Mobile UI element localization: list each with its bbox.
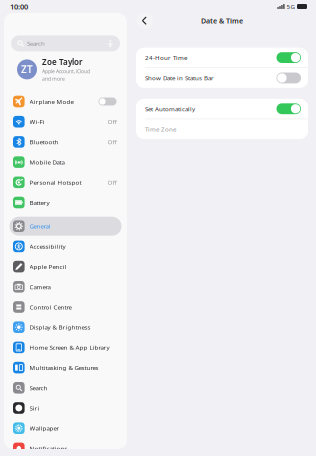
button[interactable]: Notifications xyxy=(9,438,121,456)
button[interactable]: Siri xyxy=(9,398,121,418)
button[interactable]: Apple Pencil xyxy=(9,256,121,277)
button[interactable]: Bluetooth xyxy=(9,132,121,152)
button[interactable]: Battery xyxy=(9,192,121,213)
staticText: Off xyxy=(107,117,116,126)
staticText: Notifications xyxy=(30,444,68,453)
button[interactable]: Control Centre xyxy=(9,297,121,317)
button[interactable]: Display & Brightness xyxy=(9,317,121,337)
staticText: Display & Brightness xyxy=(30,323,91,331)
button[interactable]: General xyxy=(9,216,121,236)
staticText: Set Automatically xyxy=(145,105,195,113)
staticText: ZT xyxy=(21,63,33,76)
staticText: 5G xyxy=(286,2,294,11)
button[interactable]: 24-Hour Time xyxy=(136,48,308,67)
staticText: General xyxy=(30,222,51,230)
staticText: Search xyxy=(30,384,48,392)
button[interactable]: Show Date in Status Bar xyxy=(136,68,308,88)
staticText: Date & Time xyxy=(201,16,243,26)
button[interactable]: Multitasking & Gestures xyxy=(9,357,121,378)
staticText: Mobile Data xyxy=(30,158,65,166)
button[interactable]: Set Automatically xyxy=(136,99,308,119)
staticText: Apple Account, iCloud xyxy=(42,68,90,75)
staticText: Wallpaper xyxy=(30,424,60,432)
staticText: Wi-Fi xyxy=(30,117,45,126)
staticText: Home Screen & App Library xyxy=(30,343,110,352)
button[interactable]: Back xyxy=(136,12,153,29)
button[interactable]: Accessibility xyxy=(9,236,121,256)
staticText: Zoe Taylor xyxy=(42,57,82,67)
button[interactable]: Mobile Data xyxy=(9,152,121,172)
staticText: Show Date in Status Bar xyxy=(145,74,214,82)
staticText: 10:00 xyxy=(10,1,28,12)
staticText: Control Centre xyxy=(30,303,72,311)
button[interactable]: Time Zone xyxy=(136,119,308,139)
staticText: 24-Hour Time xyxy=(145,53,187,62)
staticText: Personal Hotspot xyxy=(30,178,82,186)
staticText: Search xyxy=(27,39,45,48)
staticText: and more xyxy=(42,75,65,82)
staticText: Siri xyxy=(30,404,40,412)
staticText: Apple Pencil xyxy=(30,262,67,271)
button[interactable]: Search xyxy=(9,378,121,398)
button[interactable]: Home Screen & App Library xyxy=(9,337,121,357)
button[interactable]: Wallpaper xyxy=(9,418,121,438)
button[interactable]: Wi-Fi xyxy=(9,112,121,132)
staticText: Battery xyxy=(30,198,50,207)
button[interactable]: Airplane Mode xyxy=(9,91,121,112)
button[interactable]: Personal Hotspot xyxy=(9,172,121,192)
staticText: Bluetooth xyxy=(30,138,59,146)
staticText: Accessibility xyxy=(30,242,66,251)
staticText: Off xyxy=(107,138,116,146)
staticText: Off xyxy=(107,178,116,186)
staticText: Time Zone xyxy=(145,125,176,133)
button[interactable]: ZT xyxy=(4,54,127,84)
staticText: Multitasking & Gestures xyxy=(30,363,99,372)
staticText: Airplane Mode xyxy=(30,97,74,106)
button[interactable]: Camera xyxy=(9,277,121,297)
staticText: Camera xyxy=(30,283,51,291)
